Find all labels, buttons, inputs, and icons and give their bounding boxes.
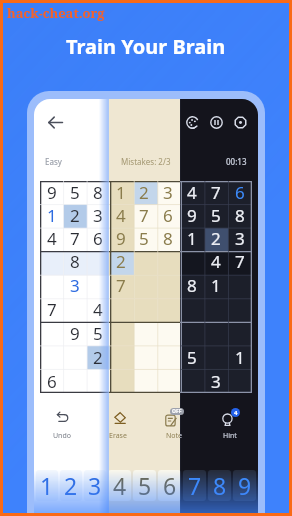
button[interactable]: 2	[86, 345, 109, 369]
button[interactable]: 2	[109, 250, 132, 273]
button[interactable]: 8	[156, 227, 180, 250]
button[interactable]: 1	[36, 470, 58, 501]
button[interactable]: 2	[109, 250, 132, 273]
button[interactable]: 9	[109, 227, 132, 250]
button[interactable]: 6	[86, 227, 109, 250]
button[interactable]: 1	[228, 345, 252, 369]
button[interactable]: 6	[156, 204, 180, 227]
button[interactable]: 6	[86, 227, 109, 250]
button[interactable]: 9	[40, 181, 63, 204]
button[interactable]: 4	[204, 250, 228, 273]
button[interactable]: 4	[202, 404, 258, 444]
button[interactable]: 7	[183, 470, 206, 501]
button[interactable]: 4	[204, 250, 228, 273]
button[interactable]: 3	[156, 181, 180, 204]
button[interactable]: 8	[180, 273, 204, 297]
button[interactable]	[63, 369, 86, 393]
button[interactable]: 1	[204, 273, 228, 297]
button[interactable]	[132, 273, 156, 297]
button[interactable]: 5	[132, 227, 156, 250]
button[interactable]	[109, 321, 132, 345]
button[interactable]: 8	[208, 470, 231, 501]
button[interactable]	[228, 369, 252, 393]
button[interactable]: 4	[109, 204, 132, 227]
button[interactable]: 2	[204, 227, 228, 250]
button[interactable]	[180, 369, 204, 393]
button[interactable]: 8	[156, 227, 180, 250]
button[interactable]: 7	[228, 250, 252, 273]
button[interactable]: 9	[109, 227, 132, 250]
button[interactable]: 8	[180, 273, 204, 297]
button[interactable]: Theme	[182, 112, 202, 132]
button[interactable]	[204, 321, 228, 345]
button[interactable]	[132, 369, 156, 393]
button[interactable]	[132, 345, 156, 369]
button[interactable]	[86, 273, 109, 297]
button[interactable]: 9	[109, 227, 132, 250]
button[interactable]	[180, 297, 204, 321]
button[interactable]: 8	[208, 470, 231, 501]
button[interactable]: 7	[63, 227, 86, 250]
button[interactable]: 5	[86, 321, 109, 345]
button[interactable]: 6	[158, 470, 181, 501]
button[interactable]	[40, 321, 63, 345]
button[interactable]: 2	[132, 181, 156, 204]
button[interactable]: 5	[204, 204, 228, 227]
button[interactable]	[180, 250, 204, 273]
button[interactable]	[132, 321, 156, 345]
button[interactable]: 9	[63, 321, 86, 345]
button[interactable]	[40, 321, 63, 345]
button[interactable]: 4	[86, 297, 109, 321]
button[interactable]	[86, 369, 109, 393]
button[interactable]: 6	[40, 369, 63, 393]
button[interactable]	[63, 297, 86, 321]
button[interactable]	[228, 273, 252, 297]
button[interactable]: 9	[233, 470, 256, 501]
button[interactable]: Pause	[206, 112, 226, 132]
button[interactable]: 1	[40, 204, 63, 227]
button[interactable]: 4	[108, 470, 131, 501]
button[interactable]: 3	[84, 470, 106, 501]
button[interactable]	[86, 250, 109, 273]
button[interactable]: 6	[40, 369, 63, 393]
button[interactable]	[156, 369, 180, 393]
button[interactable]: 1	[109, 181, 132, 204]
button[interactable]	[132, 273, 156, 297]
button[interactable]	[156, 345, 180, 369]
button[interactable]: 8	[63, 250, 86, 273]
button[interactable]: 5	[63, 181, 86, 204]
button[interactable]	[109, 297, 132, 321]
button[interactable]	[156, 321, 180, 345]
button[interactable]: 9	[233, 470, 256, 501]
button[interactable]	[86, 250, 109, 273]
button[interactable]: 1	[204, 273, 228, 297]
button[interactable]	[40, 273, 63, 297]
button[interactable]	[109, 345, 132, 369]
button[interactable]	[86, 369, 109, 393]
button[interactable]	[156, 369, 180, 393]
button[interactable]	[204, 345, 228, 369]
button[interactable]: 3	[204, 369, 228, 393]
button[interactable]: 2	[86, 345, 109, 369]
button[interactable]: 4	[202, 404, 258, 444]
button[interactable]	[132, 321, 156, 345]
button[interactable]	[86, 273, 109, 297]
button[interactable]: 4	[40, 227, 63, 250]
button[interactable]: 2	[109, 250, 132, 273]
button[interactable]: 5	[204, 204, 228, 227]
button[interactable]: 1	[109, 181, 132, 204]
button[interactable]: 4	[40, 227, 63, 250]
button[interactable]: 9	[40, 181, 63, 204]
button[interactable]: Theme	[182, 112, 202, 132]
button[interactable]	[40, 321, 63, 345]
button[interactable]	[40, 345, 63, 369]
button[interactable]	[132, 250, 156, 273]
button[interactable]: 6	[158, 470, 181, 501]
button[interactable]: Settings	[230, 112, 250, 132]
button[interactable]	[228, 321, 252, 345]
button[interactable]: Pause	[206, 112, 226, 132]
